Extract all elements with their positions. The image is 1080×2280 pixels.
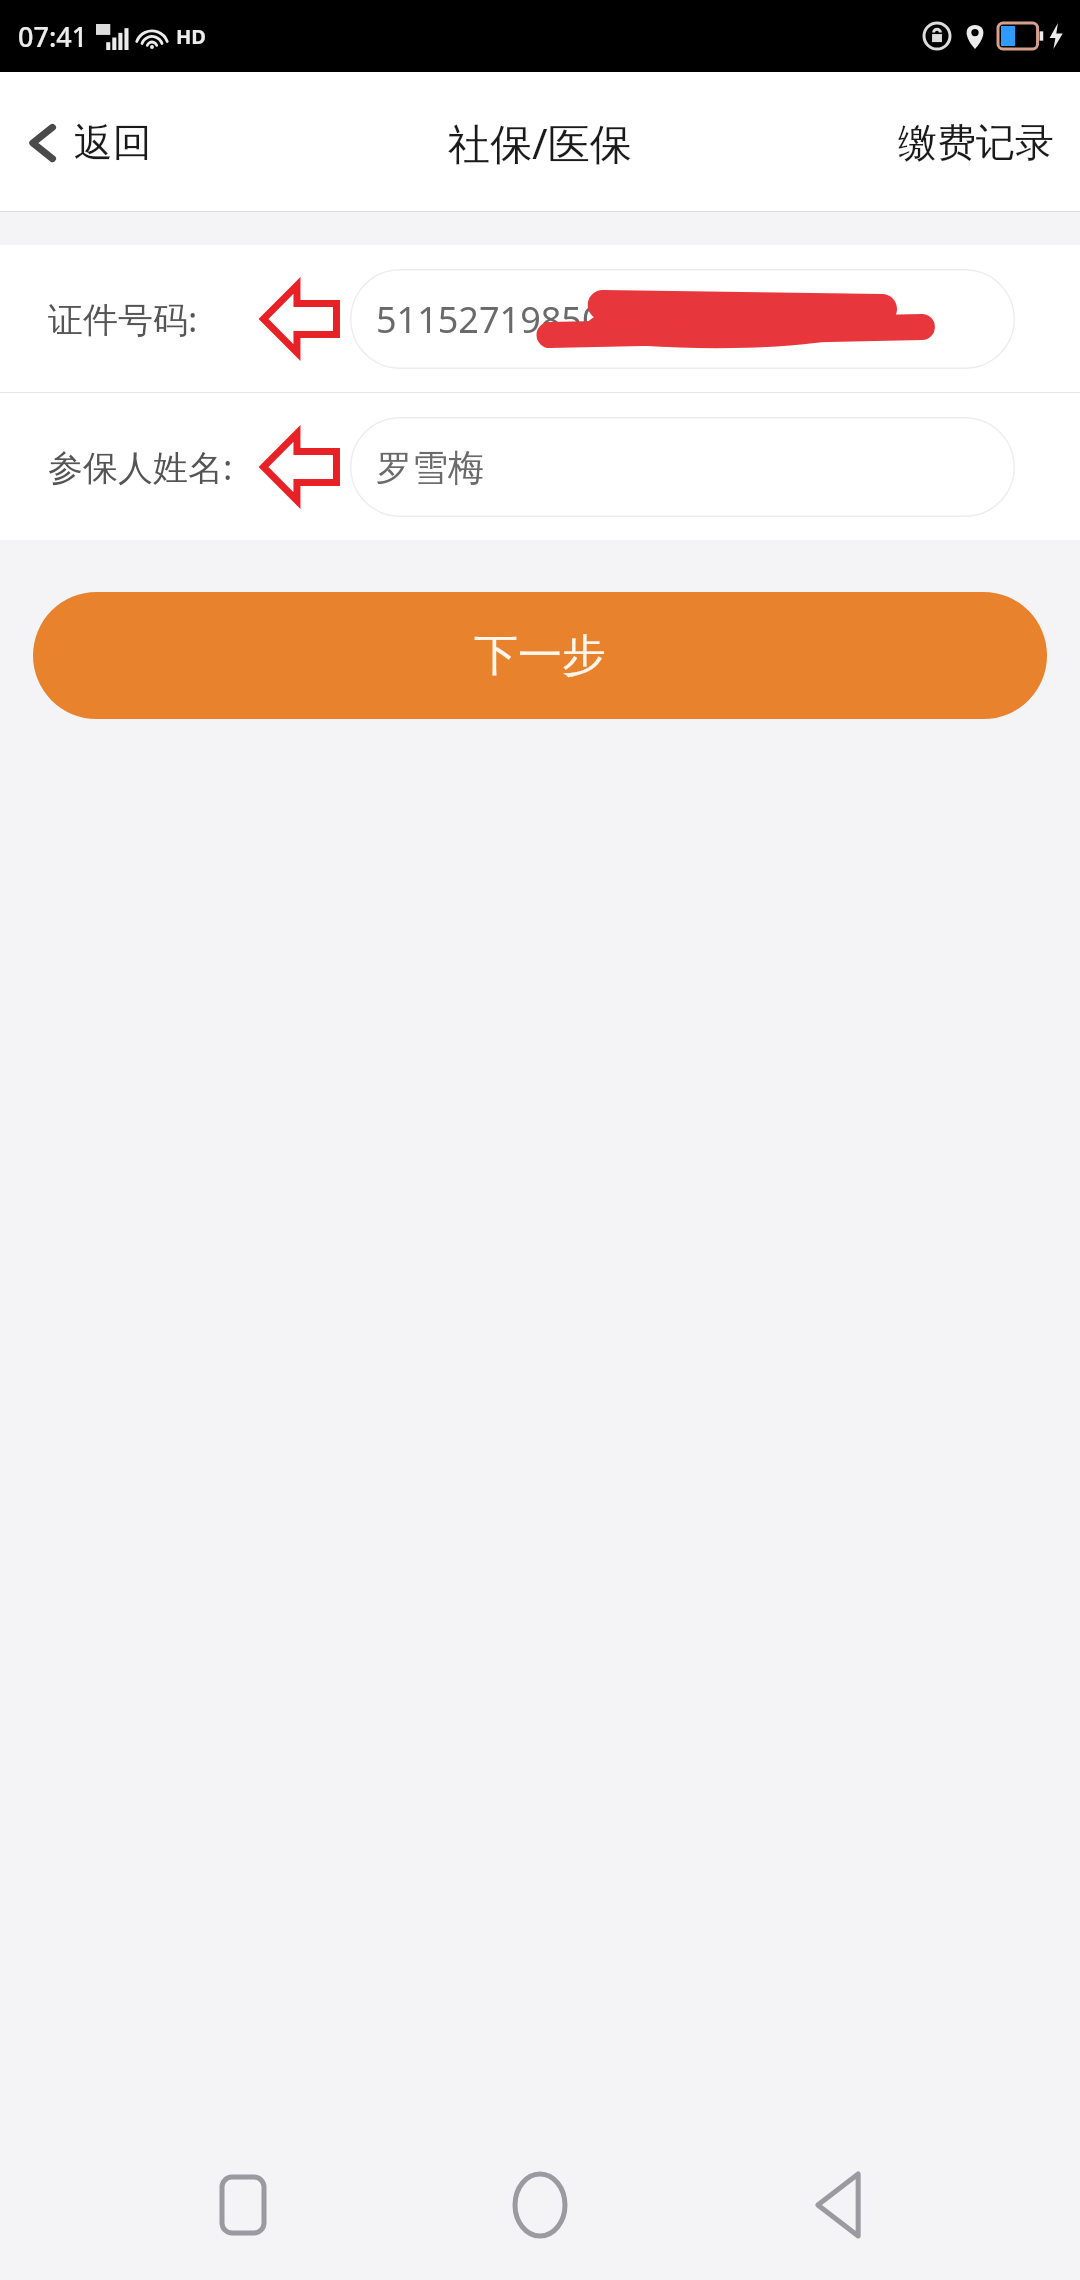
button[interactable]: Recents (188, 2150, 298, 2260)
staticText: 社保/医保 (448, 114, 632, 171)
staticText: 证件号码: (48, 295, 198, 343)
staticText: 51152719850 (376, 295, 603, 344)
button[interactable]: 缴费记录 (872, 100, 1080, 185)
button[interactable]: 下一步 (33, 592, 1047, 719)
button[interactable]: Home (485, 2150, 595, 2260)
staticText: HD (176, 23, 206, 50)
button[interactable]: 罗雪梅 (350, 417, 1015, 517)
staticText: 下一步 (474, 628, 606, 683)
button[interactable]: 返回 (0, 100, 172, 185)
button[interactable]: 证件号码: (0, 245, 1080, 392)
staticText: 缴费记录 (898, 118, 1054, 167)
button[interactable]: 51152719850 (350, 269, 1015, 369)
button[interactable]: Back (783, 2150, 893, 2260)
button[interactable]: 参保人姓名: (0, 393, 1080, 540)
other: Annotation arrow (262, 284, 338, 354)
staticText: 罗雪梅 (376, 445, 484, 490)
other: Annotation arrow (262, 432, 338, 502)
staticText: 07:41 (18, 18, 88, 55)
staticText: 参保人姓名: (48, 443, 233, 491)
staticText: 返回 (74, 118, 152, 167)
